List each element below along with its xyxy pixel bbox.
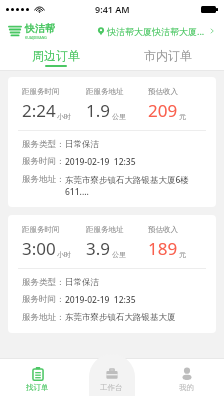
staticText: 服务地址：	[22, 174, 65, 185]
staticText: 预估收入	[148, 87, 178, 96]
button[interactable]: Workbench	[74, 358, 149, 400]
button[interactable]: 快洁帮大厦快洁帮大厦...	[97, 22, 216, 40]
staticText: 公里	[112, 250, 126, 259]
staticText: 2019-02-19 12:35	[65, 156, 204, 168]
other: Profile	[180, 367, 194, 381]
staticText: 小时	[57, 112, 71, 121]
staticText: 3:00	[22, 237, 56, 260]
other: Workbench	[105, 367, 119, 381]
staticText: 公里	[112, 112, 126, 121]
staticText: 日常保洁	[65, 139, 204, 150]
staticText: 距服务地址	[86, 225, 124, 234]
button[interactable]: 周边订单	[0, 44, 112, 70]
staticText: 距服务时间	[22, 225, 60, 234]
button[interactable]: Profile	[149, 358, 224, 400]
staticText: 距服务时间	[22, 87, 60, 96]
staticText: 189	[148, 237, 178, 260]
staticText: 服务时间：	[22, 294, 65, 305]
staticText: 预估收入	[148, 225, 178, 234]
staticText: 周边订单	[32, 48, 80, 63]
staticText: 元	[179, 250, 186, 259]
staticText: 服务类型：	[22, 277, 65, 288]
button[interactable]: 距服务时间	[8, 215, 216, 333]
staticText: KUAIJIEBANG	[25, 35, 47, 40]
staticText: 日常保洁	[65, 277, 204, 288]
staticText: 209	[148, 99, 178, 122]
staticText: 服务类型：	[22, 139, 65, 150]
staticText: 服务时间：	[22, 156, 65, 167]
staticText: 市内订单	[144, 48, 192, 63]
button[interactable]: 距服务时间	[8, 77, 216, 207]
other: Find orders	[31, 367, 45, 381]
staticText: 快洁帮大厦快洁帮大厦...	[107, 25, 205, 37]
staticText: 9:41 AM	[95, 3, 130, 15]
staticText: 距服务地址	[86, 87, 124, 96]
staticText: 1.9	[86, 99, 111, 122]
staticText: 我的	[179, 383, 194, 392]
staticText: 2019-02-19 12:35	[65, 294, 204, 306]
staticText: 快洁帮	[25, 22, 55, 35]
staticText: 找订单	[26, 383, 49, 392]
staticText: 工作台	[100, 383, 123, 392]
button[interactable]: Find orders	[0, 358, 74, 400]
staticText: 元	[179, 112, 186, 121]
staticText: 东莞市寮步镇石大路银基大厦	[65, 312, 204, 323]
staticText: 2:24	[22, 99, 56, 122]
staticText: 小时	[57, 250, 71, 259]
staticText: 服务地址：	[22, 312, 65, 323]
staticText: 3.9	[86, 237, 111, 260]
button[interactable]: 市内订单	[112, 44, 224, 70]
staticText: 东莞市寮步镇石大路银基大厦6楼 611....	[65, 174, 204, 197]
